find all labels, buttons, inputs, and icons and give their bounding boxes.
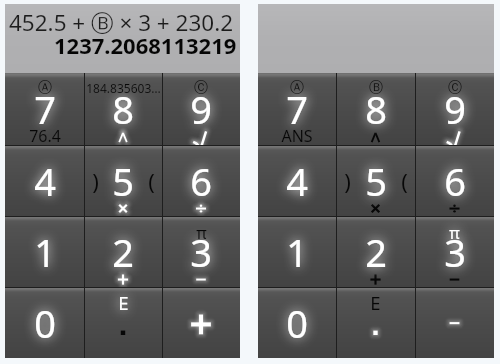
staticText: 8 [112, 83, 134, 135]
staticText: 4 [34, 155, 56, 207]
staticText: 8 [365, 83, 387, 135]
staticText: ) [344, 166, 351, 196]
staticText: 0 [286, 297, 308, 349]
button[interactable]: decimal point [84, 287, 162, 358]
staticText: 7 [34, 83, 56, 135]
staticText: Ⓒ [194, 79, 208, 97]
staticText: 9 [444, 83, 466, 135]
staticText: 3 [444, 226, 466, 278]
button[interactable]: 2 [336, 216, 415, 287]
button[interactable]: 3 [415, 216, 494, 287]
staticText: 6 [444, 155, 466, 207]
staticText: π [196, 222, 207, 244]
button[interactable]: 9 [415, 73, 494, 145]
staticText: 76.4 [29, 125, 61, 147]
button[interactable]: 1 [258, 216, 336, 287]
staticText: 6 [190, 155, 212, 207]
staticText: E [118, 290, 129, 315]
staticText: 1237.2068113219 [54, 30, 237, 60]
staticText: E [370, 290, 381, 315]
button[interactable]: 2 [84, 216, 162, 287]
button[interactable]: 8 [84, 73, 162, 145]
button[interactable]: plus [162, 287, 240, 358]
staticText: 9 [190, 83, 212, 135]
staticText: 1 [34, 226, 56, 278]
staticText: Ⓑ [369, 79, 383, 97]
button[interactable]: 3 [162, 216, 240, 287]
staticText: ( [148, 166, 155, 196]
staticText: ) [92, 166, 99, 196]
staticText: π [449, 222, 460, 244]
staticText: 184.835603… [86, 80, 161, 96]
staticText: Ⓐ [290, 79, 304, 97]
staticText: ANS [281, 125, 313, 147]
staticText: 2 [112, 226, 134, 278]
staticText: Ⓒ [448, 79, 462, 97]
staticText: Ⓐ [38, 79, 52, 97]
staticText: 5 [365, 155, 387, 207]
button[interactable]: 6 [162, 145, 240, 216]
button[interactable]: decimal point [336, 287, 415, 358]
staticText: 5 [112, 155, 134, 207]
button[interactable]: minus [415, 287, 494, 358]
button[interactable]: 8 [336, 73, 415, 145]
button[interactable]: 6 [415, 145, 494, 216]
button[interactable]: 4 [5, 145, 84, 216]
button[interactable]: 1 [5, 216, 84, 287]
staticText: 3 [190, 226, 212, 278]
staticText: 0 [34, 297, 56, 349]
staticText: 1 [286, 226, 308, 278]
button[interactable]: 5 [336, 145, 415, 216]
staticText: 2 [365, 226, 387, 278]
staticText: 4 [286, 155, 308, 207]
button[interactable]: 4 [258, 145, 336, 216]
staticText: 452.5 + Ⓑ × 3 + 230.2 [9, 7, 234, 38]
button[interactable]: 0 [5, 287, 84, 358]
button[interactable]: 9 [162, 73, 240, 145]
button[interactable]: 5 [84, 145, 162, 216]
button[interactable]: 7 [258, 73, 336, 145]
button[interactable]: 0 [258, 287, 336, 358]
staticText: 7 [286, 83, 308, 135]
button[interactable]: 7 [5, 73, 84, 145]
staticText: ( [401, 166, 408, 196]
